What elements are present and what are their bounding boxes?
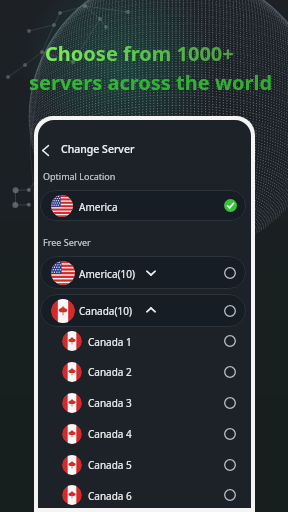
- staticText: Optimal Location: [43, 170, 116, 182]
- staticText: America: [79, 200, 118, 214]
- staticText: Change Server: [61, 142, 135, 156]
- staticText: Canada 3: [88, 396, 132, 410]
- button[interactable]: [40, 190, 246, 221]
- button[interactable]: [40, 256, 246, 289]
- staticText: Canada 2: [88, 365, 132, 379]
- button[interactable]: [40, 480, 246, 508]
- button[interactable]: [40, 357, 246, 387]
- staticText: Choose from 1000+: [45, 40, 234, 67]
- button[interactable]: [40, 326, 246, 356]
- staticText: Canada 5: [88, 458, 132, 472]
- button[interactable]: [40, 449, 246, 479]
- staticText: Canada 6: [88, 489, 132, 503]
- staticText: servers across the world: [29, 69, 273, 96]
- button[interactable]: [40, 294, 246, 327]
- staticText: Canada 4: [88, 427, 132, 441]
- button[interactable]: [40, 388, 246, 418]
- staticText: Free Server: [43, 236, 91, 248]
- button[interactable]: Back: [38, 137, 58, 163]
- staticText: Canada(10): [79, 304, 132, 318]
- button[interactable]: [40, 419, 246, 449]
- staticText: America(10): [79, 267, 135, 281]
- staticText: Canada 1: [88, 335, 132, 349]
